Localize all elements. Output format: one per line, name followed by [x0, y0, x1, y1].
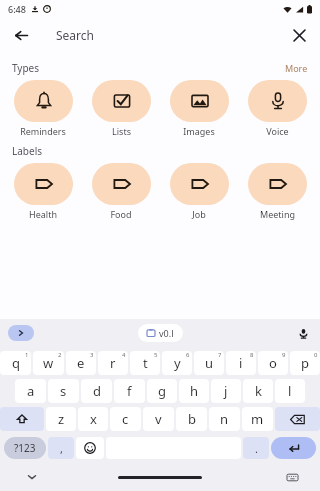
staticText: r — [110, 354, 116, 372]
staticText: b — [188, 410, 196, 428]
button[interactable]: f — [114, 379, 145, 403]
button[interactable]: Backspace — [275, 407, 320, 431]
button[interactable]: Hide keyboard — [22, 467, 42, 487]
staticText: 3 — [90, 351, 94, 359]
staticText: g — [158, 382, 166, 400]
button[interactable]: q — [0, 351, 31, 375]
staticText: h — [190, 382, 199, 400]
staticText: o — [269, 354, 277, 372]
button[interactable]: Lists — [82, 78, 160, 139]
button[interactable]: c — [110, 407, 141, 431]
button[interactable]: o — [258, 351, 288, 375]
button[interactable]: Voice — [238, 78, 316, 139]
button[interactable]: d — [81, 379, 112, 403]
button[interactable]: b — [176, 407, 207, 431]
staticText: 9 — [282, 351, 286, 359]
staticText: ?123 — [14, 441, 36, 455]
staticText: y — [174, 354, 181, 372]
staticText: j — [224, 382, 228, 400]
staticText: 6:48 — [8, 3, 26, 15]
staticText: . — [255, 441, 258, 456]
staticText: s — [60, 382, 67, 400]
button[interactable]: Comma — [48, 437, 74, 459]
staticText: v0.l — [159, 327, 174, 339]
staticText: i — [239, 354, 243, 372]
button[interactable]: Period — [243, 437, 269, 459]
staticText: 4 — [122, 351, 126, 359]
staticText: Health — [29, 208, 57, 220]
button[interactable]: v — [143, 407, 174, 431]
staticText: 6 — [186, 351, 190, 359]
button[interactable]: Expand suggestions — [8, 325, 34, 341]
staticText: Labels — [12, 144, 43, 158]
staticText: z — [58, 410, 65, 428]
staticText: 7 — [218, 351, 222, 359]
staticText: Reminders — [20, 125, 66, 137]
staticText: k — [255, 382, 262, 400]
button[interactable]: s — [48, 379, 79, 403]
button[interactable]: Health — [4, 161, 82, 222]
button[interactable]: p — [290, 351, 320, 375]
button[interactable]: Voice input — [294, 324, 312, 342]
button[interactable]: Close — [284, 20, 314, 50]
staticText: 2 — [58, 351, 62, 359]
staticText: c — [122, 410, 129, 428]
button[interactable]: n — [209, 407, 240, 431]
button[interactable]: Shift — [0, 407, 44, 431]
staticText: 1 — [25, 351, 29, 359]
staticText: Voice — [266, 125, 289, 137]
button[interactable]: j — [211, 379, 241, 403]
button[interactable]: k — [243, 379, 273, 403]
staticText: Types — [12, 61, 40, 75]
button[interactable]: e — [66, 351, 96, 375]
button[interactable]: Meeting — [238, 161, 316, 222]
button[interactable]: More — [283, 61, 310, 75]
staticText: Search — [56, 27, 94, 43]
button[interactable]: l — [275, 379, 305, 403]
button[interactable]: v0.l — [138, 324, 183, 342]
button[interactable]: g — [147, 379, 177, 403]
staticText: p — [301, 354, 309, 372]
staticText: w — [43, 354, 54, 372]
button[interactable]: m — [242, 407, 273, 431]
staticText: u — [205, 354, 214, 372]
staticText: t — [143, 354, 148, 372]
staticText: m — [251, 410, 264, 428]
staticText: x — [90, 410, 97, 428]
button[interactable]: y — [162, 351, 192, 375]
button[interactable]: u — [194, 351, 224, 375]
button[interactable]: w — [33, 351, 64, 375]
staticText: e — [77, 354, 85, 372]
button[interactable]: h — [179, 379, 209, 403]
staticText: Images — [183, 125, 215, 137]
button[interactable]: t — [130, 351, 160, 375]
button[interactable]: Back — [6, 20, 36, 50]
button[interactable]: Reminders — [4, 78, 82, 139]
staticText: l — [288, 382, 292, 400]
staticText: Meeting — [260, 208, 295, 220]
staticText: 8 — [250, 351, 254, 359]
staticText: d — [93, 382, 101, 400]
staticText: q — [12, 354, 20, 372]
staticText: f — [127, 382, 132, 400]
staticText: More — [285, 62, 308, 74]
button[interactable]: i — [226, 351, 256, 375]
button[interactable]: Enter — [271, 437, 316, 459]
staticText: , — [60, 441, 63, 456]
button[interactable]: Food — [82, 161, 160, 222]
button[interactable]: ?123 — [4, 437, 46, 459]
button[interactable]: r — [98, 351, 128, 375]
button[interactable]: a — [15, 379, 46, 403]
button[interactable]: Emoji — [76, 437, 104, 459]
button[interactable]: z — [46, 407, 76, 431]
staticText: Food — [110, 208, 132, 220]
staticText: a — [27, 382, 35, 400]
button[interactable]: x — [78, 407, 108, 431]
button[interactable]: Switch keyboard — [282, 467, 302, 487]
staticText: Lists — [112, 125, 131, 137]
button[interactable]: Images — [160, 78, 238, 139]
staticText: 0 — [314, 351, 318, 359]
button[interactable]: Job — [160, 161, 238, 222]
staticText: v — [155, 410, 162, 428]
